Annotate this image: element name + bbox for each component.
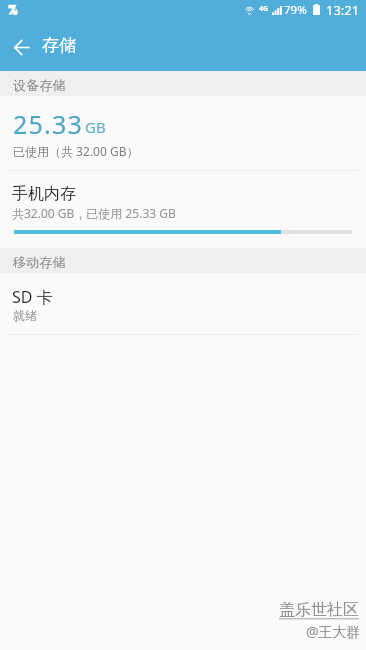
- staticText: GB: [85, 117, 106, 137]
- button[interactable]: 手机内存: [0, 171, 366, 248]
- staticText: 盖乐世社区: [279, 600, 359, 620]
- staticText: SD 卡: [12, 286, 53, 308]
- staticText: 25.33: [13, 107, 83, 141]
- staticText: 存储: [42, 35, 76, 56]
- staticText: 4G: [259, 4, 269, 14]
- button[interactable]: SD 卡: [0, 273, 366, 335]
- staticText: 79%: [284, 2, 307, 18]
- staticText: 移动存储: [13, 254, 66, 271]
- staticText: 共32.00 GB，已使用 25.33 GB: [12, 205, 176, 221]
- staticText: @王大群: [306, 622, 361, 641]
- staticText: 13:21: [326, 1, 360, 19]
- staticText: 已使用（共 32.00 GB）: [13, 143, 139, 159]
- button[interactable]: Back: [0, 24, 47, 71]
- staticText: 就绪: [13, 308, 37, 323]
- staticText: 手机内存: [12, 184, 76, 204]
- staticText: 设备存储: [13, 77, 66, 94]
